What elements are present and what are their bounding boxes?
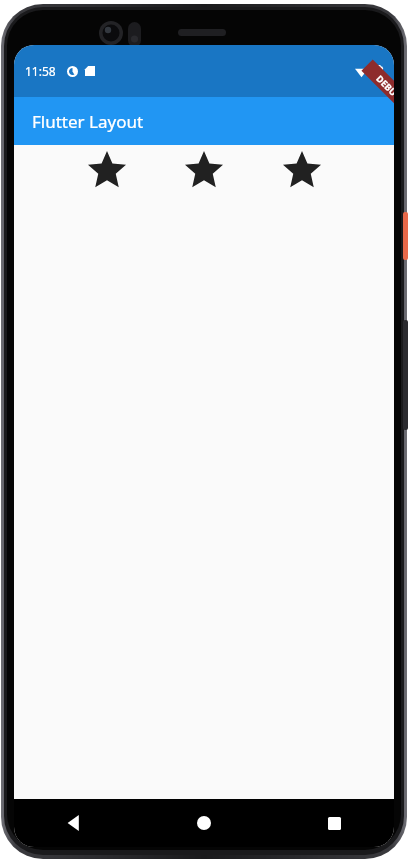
button[interactable]: Star	[281, 150, 323, 192]
staticText: DEBUG	[374, 72, 394, 103]
button[interactable]: Home	[184, 803, 224, 843]
button[interactable]: Star	[183, 150, 225, 192]
button[interactable]: Back	[54, 803, 94, 843]
staticText: 11:58	[25, 63, 56, 79]
button[interactable]: Flutter Layout	[14, 97, 394, 145]
button[interactable]: Recents	[314, 803, 354, 843]
button[interactable]: Star	[86, 150, 128, 192]
staticText: Flutter Layout	[32, 110, 144, 133]
